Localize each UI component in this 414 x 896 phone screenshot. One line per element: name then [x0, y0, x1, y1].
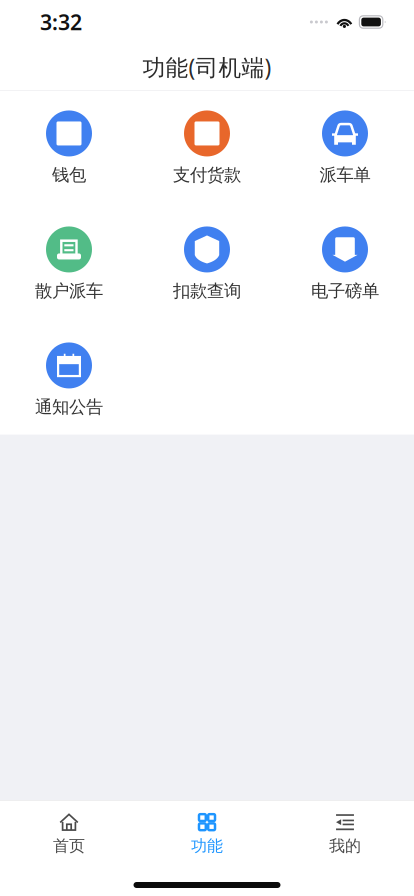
staticText: 散户派车 — [35, 280, 103, 302]
staticText: 首页 — [53, 836, 85, 856]
button[interactable]: 功能 — [138, 801, 276, 859]
staticText: 3:32 — [40, 8, 82, 36]
button[interactable]: 散户派车 — [0, 224, 138, 305]
button[interactable]: 首页 — [0, 801, 138, 859]
button[interactable]: 扣款查询 — [138, 224, 276, 305]
button[interactable]: 支付货款 — [138, 108, 276, 189]
staticText: 支付货款 — [173, 164, 241, 186]
button[interactable]: 派车单 — [276, 108, 414, 189]
staticText: 电子磅单 — [311, 280, 379, 302]
staticText: 功能 — [191, 836, 223, 856]
staticText: 通知公告 — [35, 396, 103, 418]
button[interactable]: 钱包 — [0, 108, 138, 189]
staticText: 我的 — [329, 836, 361, 856]
staticText: 扣款查询 — [173, 280, 241, 302]
button[interactable]: 我的 — [276, 801, 414, 859]
staticText: 钱包 — [52, 164, 86, 186]
staticText: 派车单 — [319, 164, 370, 186]
staticText: 功能(司机端) — [142, 52, 271, 82]
button[interactable]: 通知公告 — [0, 340, 138, 421]
button[interactable]: 电子磅单 — [276, 224, 414, 305]
